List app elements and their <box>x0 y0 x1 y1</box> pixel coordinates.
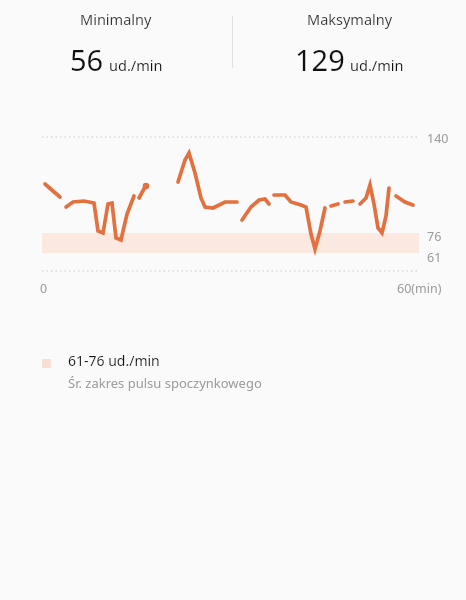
staticText: 60(min) <box>397 280 442 297</box>
button[interactable]: Resting heart rate range colour key <box>38 347 266 396</box>
staticText: 0 <box>40 280 48 297</box>
staticText: 56 <box>70 40 104 79</box>
staticText: Maksymalny <box>307 9 393 29</box>
staticText: 140 <box>427 130 449 147</box>
staticText: Minimalny <box>80 9 152 29</box>
staticText: ud./min <box>350 55 404 75</box>
staticText: 129 <box>295 40 345 79</box>
staticText: 61 <box>427 249 442 266</box>
button[interactable]: Minimalny <box>0 0 232 79</box>
staticText: 61-76 ud./min <box>68 351 160 370</box>
staticText: Śr. zakres pulsu spoczynkowego <box>68 374 262 392</box>
staticText: ud./min <box>109 55 163 75</box>
button[interactable]: Maksymalny <box>233 0 466 79</box>
staticText: 76 <box>427 228 442 245</box>
